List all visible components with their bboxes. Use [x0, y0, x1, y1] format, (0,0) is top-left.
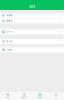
button[interactable]: 我 — [48, 92, 64, 100]
staticText: 发现 — [29, 4, 35, 9]
button[interactable]: 通讯录 — [16, 92, 32, 100]
button[interactable]: 微信 — [0, 92, 16, 100]
staticText: 朋友圈 — [6, 14, 12, 17]
staticText: 视频号 — [6, 20, 12, 22]
staticText: 小程序 — [6, 49, 12, 51]
staticText: 搜一搜 — [6, 40, 12, 43]
button[interactable]: 视频号 — [0, 18, 64, 23]
button[interactable]: 发现 — [32, 92, 48, 100]
button[interactable]: 朋友圈 — [0, 13, 64, 18]
button[interactable]: 扫一扫 — [0, 29, 64, 34]
staticText: 我 — [55, 96, 57, 98]
button[interactable]: 小程序 — [0, 47, 64, 52]
staticText: 发现 — [38, 96, 42, 98]
button[interactable]: 搜一搜 — [0, 39, 64, 44]
staticText: 通讯录 — [21, 96, 27, 98]
staticText: 扫一扫 — [6, 31, 12, 33]
staticText: 微信 — [6, 96, 10, 98]
